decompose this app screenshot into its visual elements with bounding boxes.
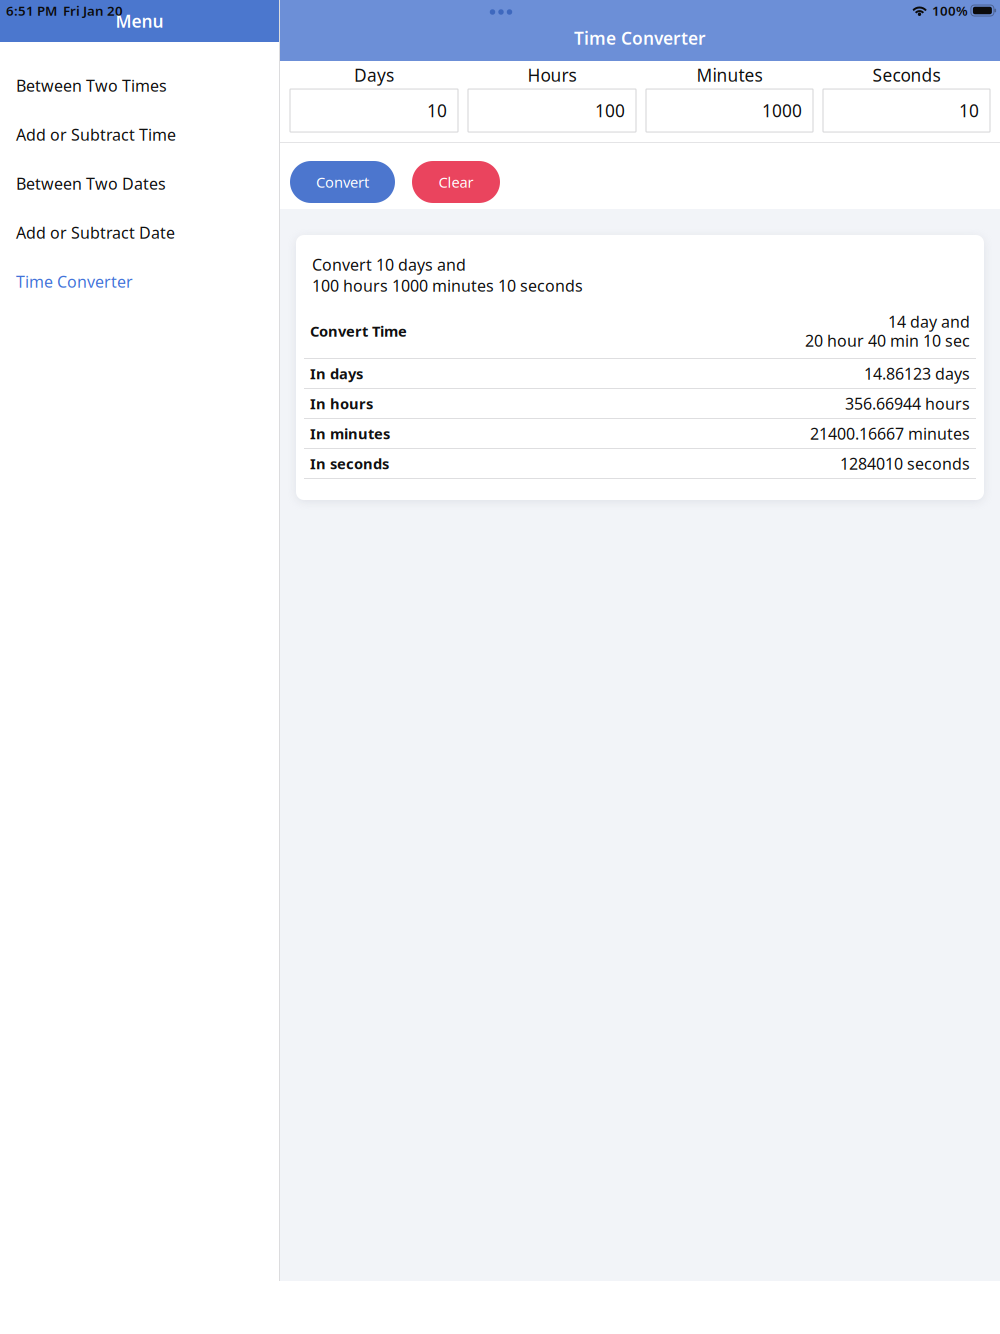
- staticText: 100: [595, 99, 625, 122]
- staticText: 20 hour 40 min 10 sec: [805, 330, 970, 351]
- staticText: In seconds: [310, 454, 389, 473]
- staticText: Convert: [316, 172, 369, 192]
- button[interactable]: Time Converter: [0, 257, 279, 306]
- button[interactable]: Add or Subtract Date: [0, 208, 279, 257]
- staticText: 10: [427, 99, 447, 122]
- staticText: In days: [310, 364, 363, 383]
- button[interactable]: Clear: [412, 161, 500, 203]
- button[interactable]: Days field, 10: [290, 89, 458, 132]
- button[interactable]: Hours field, 100: [468, 89, 636, 132]
- staticText: Minutes: [696, 63, 762, 86]
- staticText: 356.66944 hours: [845, 393, 970, 414]
- staticText: Time Converter: [574, 26, 706, 49]
- staticText: Hours: [527, 63, 576, 86]
- button[interactable]: Between Two Times: [0, 61, 279, 110]
- button[interactable]: Seconds field, 10: [823, 89, 990, 132]
- staticText: 100%: [932, 2, 968, 19]
- button[interactable]: Between Two Dates: [0, 159, 279, 208]
- staticText: 14 day and: [888, 311, 970, 332]
- staticText: 1284010 seconds: [840, 453, 970, 474]
- staticText: Menu: [115, 9, 163, 32]
- staticText: Between Two Dates: [16, 173, 166, 194]
- button[interactable]: Convert: [290, 161, 395, 203]
- button[interactable]: Add or Subtract Time: [0, 110, 279, 159]
- staticText: In minutes: [310, 424, 390, 443]
- staticText: Time Converter: [16, 271, 133, 292]
- staticText: Add or Subtract Date: [16, 222, 175, 243]
- staticText: Convert Time: [310, 321, 407, 341]
- staticText: Seconds: [872, 63, 940, 86]
- staticText: 100 hours 1000 minutes 10 seconds: [312, 275, 583, 296]
- staticText: Convert 10 days and: [312, 254, 466, 275]
- staticText: 6:51 PM Fri Jan 20: [6, 2, 123, 19]
- staticText: In hours: [310, 394, 373, 413]
- staticText: 1000: [762, 99, 802, 122]
- staticText: Between Two Times: [16, 75, 167, 96]
- staticText: Clear: [438, 172, 473, 192]
- staticText: 21400.16667 minutes: [810, 423, 970, 444]
- staticText: 10: [959, 99, 979, 122]
- button[interactable]: Minutes field, 1000: [646, 89, 813, 132]
- staticText: Days: [354, 63, 394, 86]
- staticText: Add or Subtract Time: [16, 124, 176, 145]
- staticText: 14.86123 days: [864, 363, 970, 384]
